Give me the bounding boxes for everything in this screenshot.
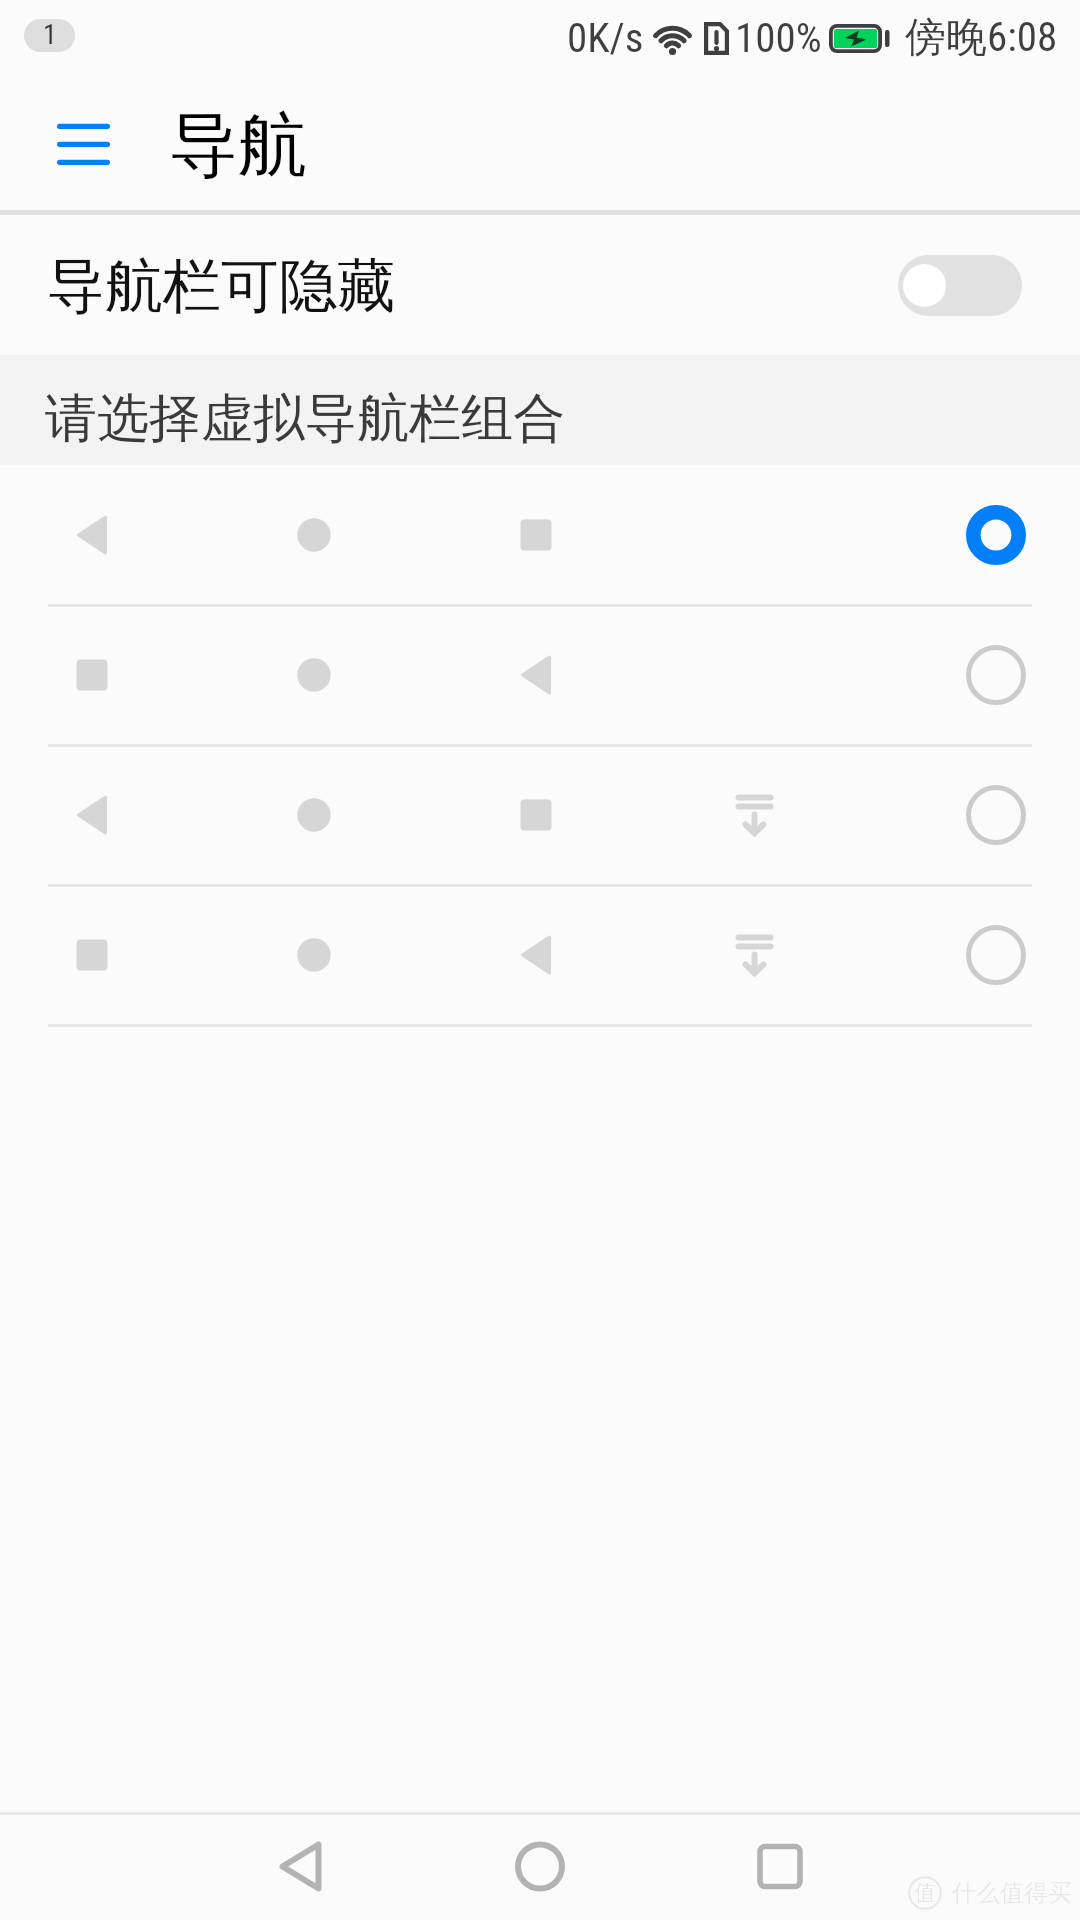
button[interactable]: 导航栏可隐藏 bbox=[0, 215, 1080, 355]
staticText: 傍晚6:08 bbox=[905, 12, 1058, 64]
staticText: 导航 bbox=[169, 103, 307, 190]
button[interactable]: Back bbox=[240, 1814, 360, 1919]
staticText: 100% bbox=[735, 14, 822, 62]
staticText: 什么值得买 bbox=[952, 1878, 1072, 1908]
button[interactable]: Home bbox=[480, 1814, 600, 1919]
button[interactable] bbox=[0, 747, 1080, 887]
staticText: 0K/s bbox=[567, 14, 644, 62]
staticText: 导航栏可隐藏 bbox=[47, 250, 395, 323]
button[interactable]: Recents bbox=[720, 1814, 840, 1919]
button[interactable] bbox=[0, 607, 1080, 747]
button[interactable] bbox=[0, 467, 1080, 607]
button[interactable] bbox=[0, 887, 1080, 1027]
staticText: 请选择虚拟导航栏组合 bbox=[45, 386, 565, 452]
staticText: 值 bbox=[914, 1879, 936, 1907]
staticText: 1 bbox=[43, 19, 57, 51]
button[interactable]: Menu bbox=[25, 91, 142, 199]
